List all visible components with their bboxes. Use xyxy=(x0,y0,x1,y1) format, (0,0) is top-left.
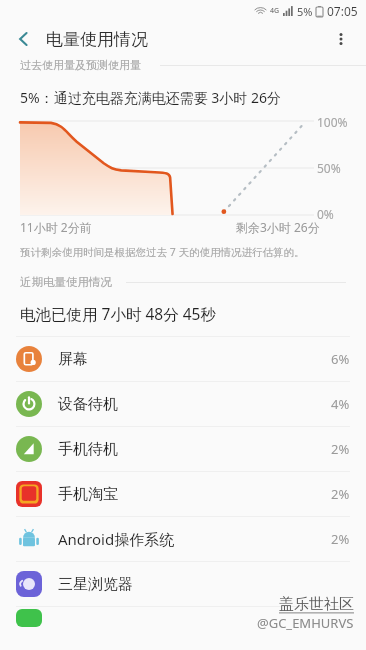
staticText: 2% xyxy=(331,530,350,548)
staticText: 设备待机 xyxy=(58,395,118,414)
staticText: 预计剩余使用时间是根据您过去 7 天的使用情况进行估算的。 xyxy=(20,245,305,259)
staticText: 11小时 2分前 xyxy=(20,219,92,235)
button[interactable]: Back xyxy=(8,23,40,55)
staticText: 2% xyxy=(331,440,350,458)
staticText: 盖乐世社区 xyxy=(279,595,354,614)
staticText: 4G xyxy=(270,6,280,16)
staticText: 屏幕 xyxy=(58,350,88,369)
staticText: 6% xyxy=(331,350,350,368)
staticText: 50% xyxy=(317,160,341,176)
staticText: 手机淘宝 xyxy=(58,485,118,504)
button[interactable]: 设备待机 xyxy=(0,382,366,426)
button[interactable]: 手机淘宝 xyxy=(0,472,366,516)
staticText: 电池已使用 7小时 48分 45秒 xyxy=(20,303,216,324)
staticText: 100% xyxy=(317,114,348,130)
staticText: 5% xyxy=(297,4,313,19)
staticText: 手机待机 xyxy=(58,440,118,459)
staticText: 剩余3小时 26分 xyxy=(236,219,320,235)
staticText: 过去使用量及预测使用量 xyxy=(20,58,141,72)
button[interactable]: 三星浏览器 xyxy=(0,562,366,606)
button[interactable]: More options xyxy=(324,22,358,56)
button[interactable]: Android操作系统 xyxy=(0,517,366,561)
button[interactable]: 手机待机 xyxy=(0,427,366,471)
staticText: 4% xyxy=(331,395,350,413)
staticText: 电量使用情况 xyxy=(46,29,148,50)
staticText: 07:05 xyxy=(327,3,358,19)
staticText: 5%：通过充电器充满电还需要 3小时 26分 xyxy=(20,88,281,107)
button[interactable]: 屏幕 xyxy=(0,337,366,381)
staticText: @GC_EMHURVS xyxy=(257,614,354,632)
staticText: 0% xyxy=(317,206,334,222)
staticText: 三星浏览器 xyxy=(58,575,133,594)
staticText: 近期电量使用情况 xyxy=(20,275,112,289)
staticText: 2% xyxy=(331,485,350,503)
staticText: Android操作系统 xyxy=(58,529,175,549)
button[interactable] xyxy=(0,607,366,627)
